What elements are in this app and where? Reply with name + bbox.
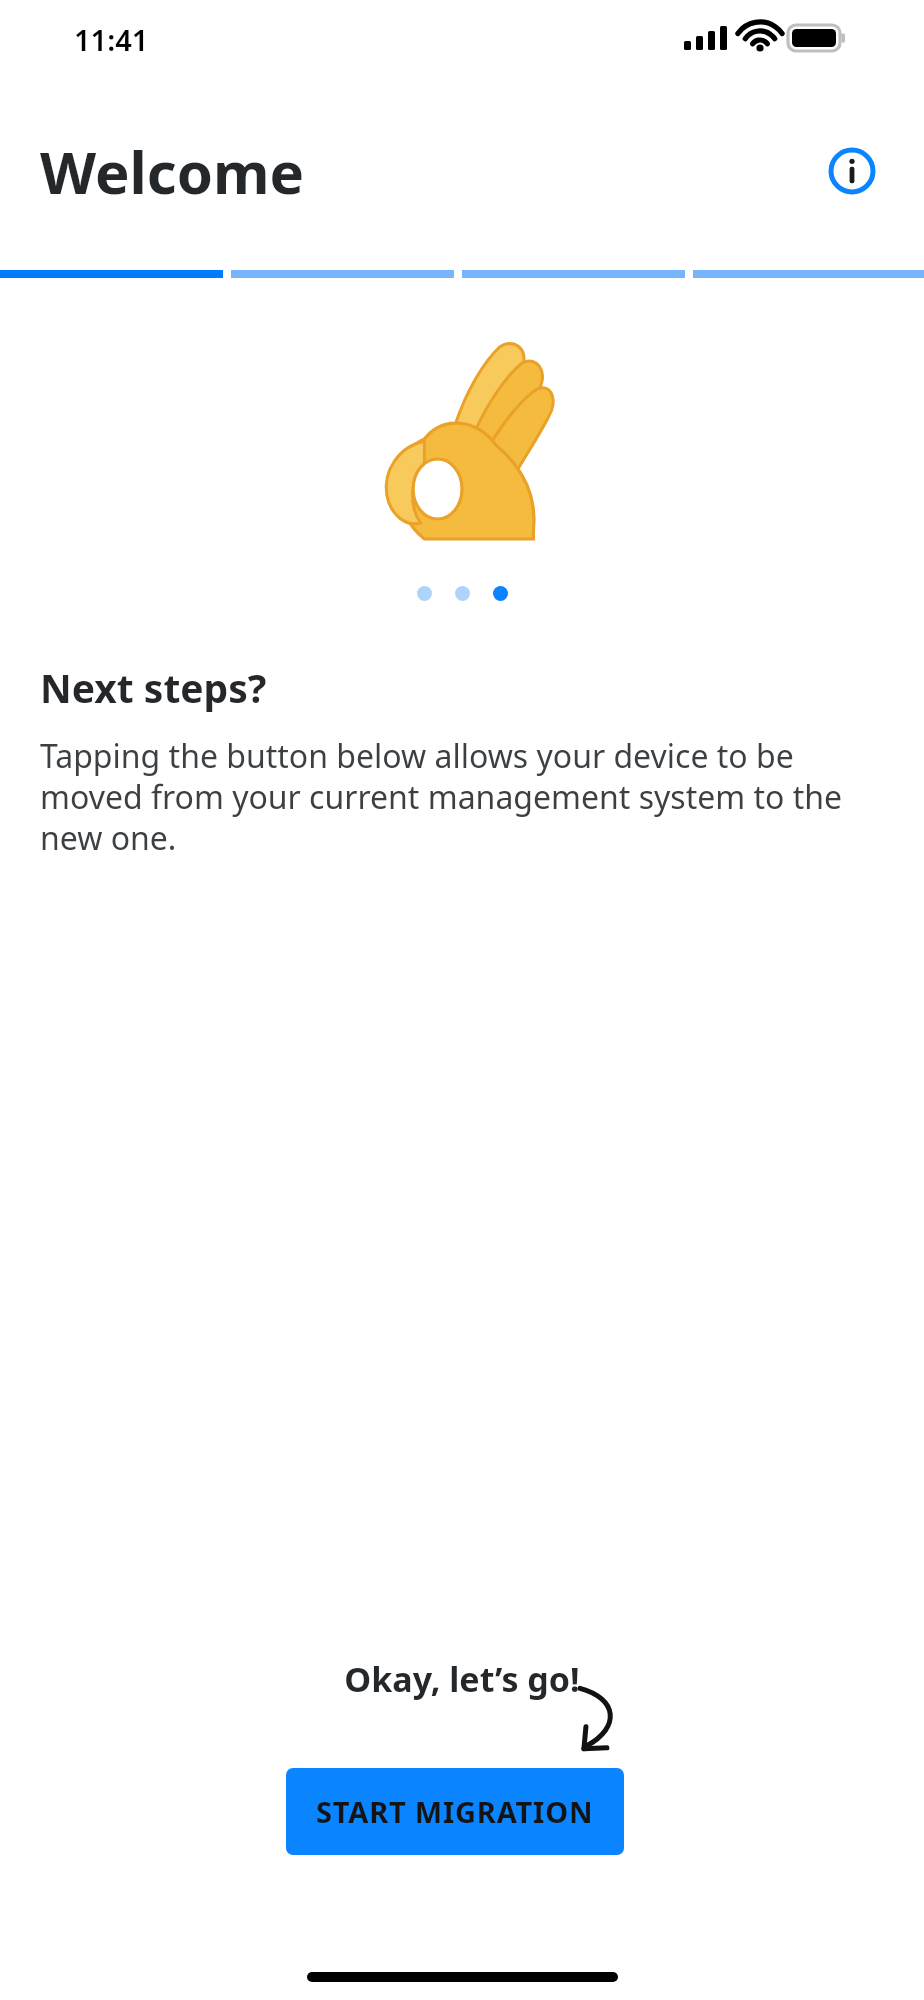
- staticText: Welcome: [40, 132, 305, 211]
- staticText: 11:41: [74, 20, 149, 59]
- button[interactable]: START MIGRATION: [286, 1768, 624, 1855]
- staticText: Tapping the button below allows your dev…: [40, 734, 894, 860]
- staticText: START MIGRATION: [316, 1792, 594, 1831]
- staticText: Next steps?: [40, 661, 267, 714]
- button[interactable]: Information: [820, 139, 884, 203]
- staticText: Okay, let’s go!: [344, 1656, 580, 1702]
